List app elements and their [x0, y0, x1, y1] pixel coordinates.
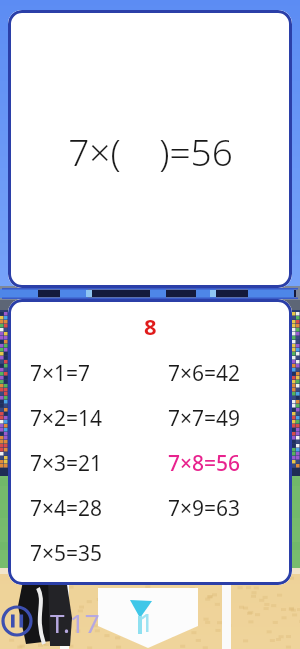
- button[interactable]: Pause: [1, 605, 33, 637]
- button[interactable]: 8: [8, 299, 292, 585]
- staticText: 7×4=28: [30, 494, 103, 523]
- staticText: 7×2=14: [30, 404, 103, 433]
- staticText: 7×5=35: [30, 539, 103, 568]
- button[interactable]: 7×( )=56: [8, 10, 292, 288]
- staticText: 7×9=63: [168, 494, 241, 523]
- staticText: 7×3=21: [30, 449, 103, 478]
- staticText: 8: [144, 311, 157, 341]
- staticText: 1: [139, 604, 154, 639]
- staticText: 7×6=42: [168, 359, 241, 388]
- staticText: T.17: [50, 605, 100, 640]
- staticText: 7×( )=56: [68, 126, 233, 176]
- staticText: 7×1=7: [30, 359, 91, 388]
- staticText: 7×8=56: [168, 449, 241, 478]
- staticText: 7×7=49: [168, 404, 241, 433]
